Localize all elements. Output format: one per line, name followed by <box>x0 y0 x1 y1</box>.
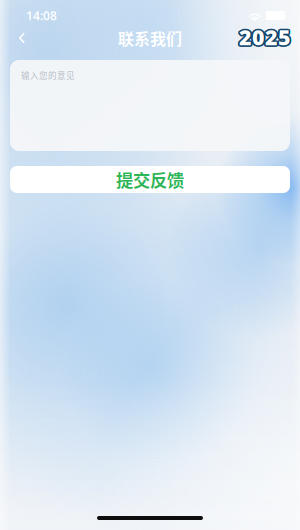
staticText: 2025 <box>240 22 292 50</box>
staticText: 2025 <box>239 23 291 51</box>
staticText: 2025 <box>240 23 292 52</box>
staticText: 输入您的意见 <box>21 69 75 81</box>
staticText: 2025 <box>237 23 289 52</box>
staticText: 提交反馈 <box>116 167 184 192</box>
staticText: 2025 <box>238 24 290 52</box>
staticText: 2025 <box>237 22 289 50</box>
staticText: 2025 <box>240 22 292 50</box>
staticText: 2025 <box>238 22 290 50</box>
button[interactable]: Back <box>0 26 39 54</box>
staticText: 2025 <box>240 23 292 51</box>
button[interactable]: 提交反馈 <box>0 166 300 193</box>
staticText: 2025 <box>239 24 291 53</box>
staticText: 2025 <box>239 21 291 50</box>
staticText: 14:08 <box>26 7 57 23</box>
staticText: 2025 <box>237 23 289 51</box>
staticText: 联系我们 <box>118 26 182 50</box>
staticText: 2025 <box>240 24 292 52</box>
